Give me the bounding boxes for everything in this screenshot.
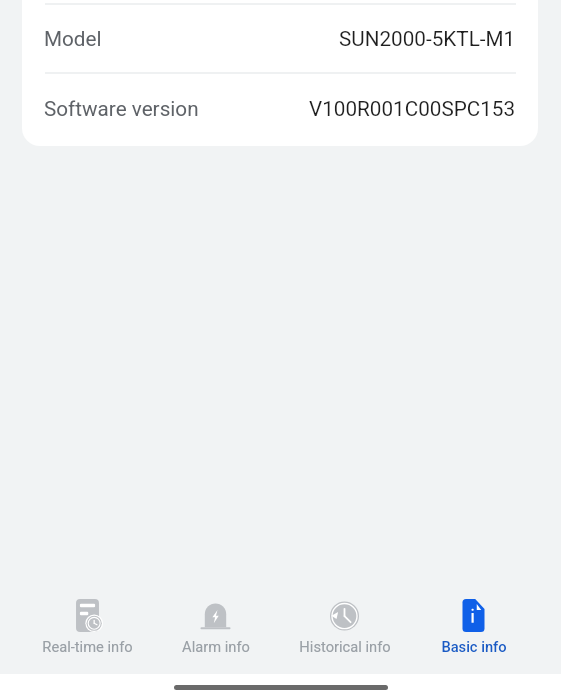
staticText: Model: [44, 27, 102, 51]
staticText: Alarm info: [182, 638, 250, 655]
staticText: V100R001C00SPC153: [309, 97, 516, 121]
staticText: Software version: [44, 97, 199, 121]
button[interactable]: Software version: [22, 74, 538, 143]
button[interactable]: Model: [22, 5, 538, 72]
button[interactable]: Real-time info: [23, 582, 151, 672]
button[interactable]: Basic info: [409, 582, 538, 672]
button[interactable]: Alarm info: [151, 582, 280, 672]
button[interactable]: Historical info: [280, 582, 409, 672]
staticText: Real-time info: [42, 638, 133, 655]
staticText: SUN2000-5KTL-M1: [339, 27, 516, 51]
staticText: Historical info: [299, 638, 391, 655]
staticText: Basic info: [441, 638, 507, 655]
